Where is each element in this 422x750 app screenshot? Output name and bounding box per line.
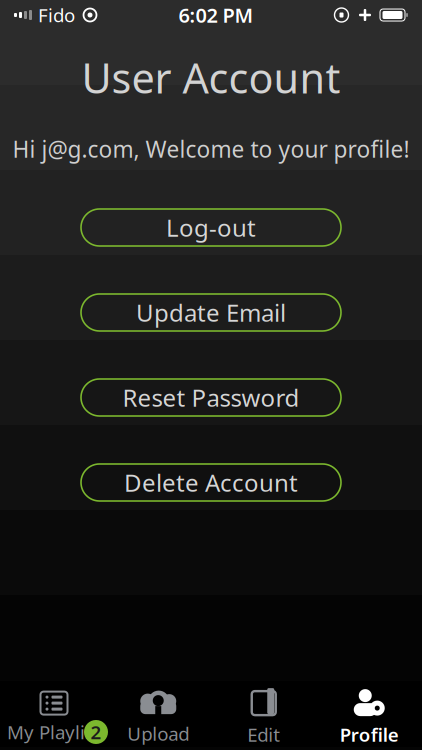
button[interactable]: Reset Password [81, 379, 341, 416]
staticText: Update Email [136, 297, 286, 328]
staticText: Log-out [166, 212, 256, 243]
button[interactable]: Update Email [81, 294, 341, 331]
staticText: Hi j@g.com, Welcome to your profile! [12, 134, 409, 164]
button[interactable]: Delete Account [81, 464, 341, 501]
button[interactable]: Edit [211, 689, 316, 747]
staticText: Upload [127, 721, 189, 746]
staticText: 6:02 PM [178, 2, 253, 28]
staticText: Edit [247, 722, 280, 747]
button[interactable]: Upload [105, 690, 211, 746]
staticText: User Account [81, 50, 340, 105]
staticText: Reset Password [122, 382, 299, 413]
button[interactable]: Log-out [81, 209, 341, 246]
staticText: Profile [340, 722, 399, 747]
staticText: My Playlist [7, 720, 101, 744]
staticText: Fido [38, 3, 75, 27]
button[interactable]: My Playlist [0, 692, 105, 744]
staticText: 2 [90, 720, 101, 744]
staticText: Delete Account [124, 467, 298, 498]
button[interactable]: Profile [316, 689, 422, 747]
